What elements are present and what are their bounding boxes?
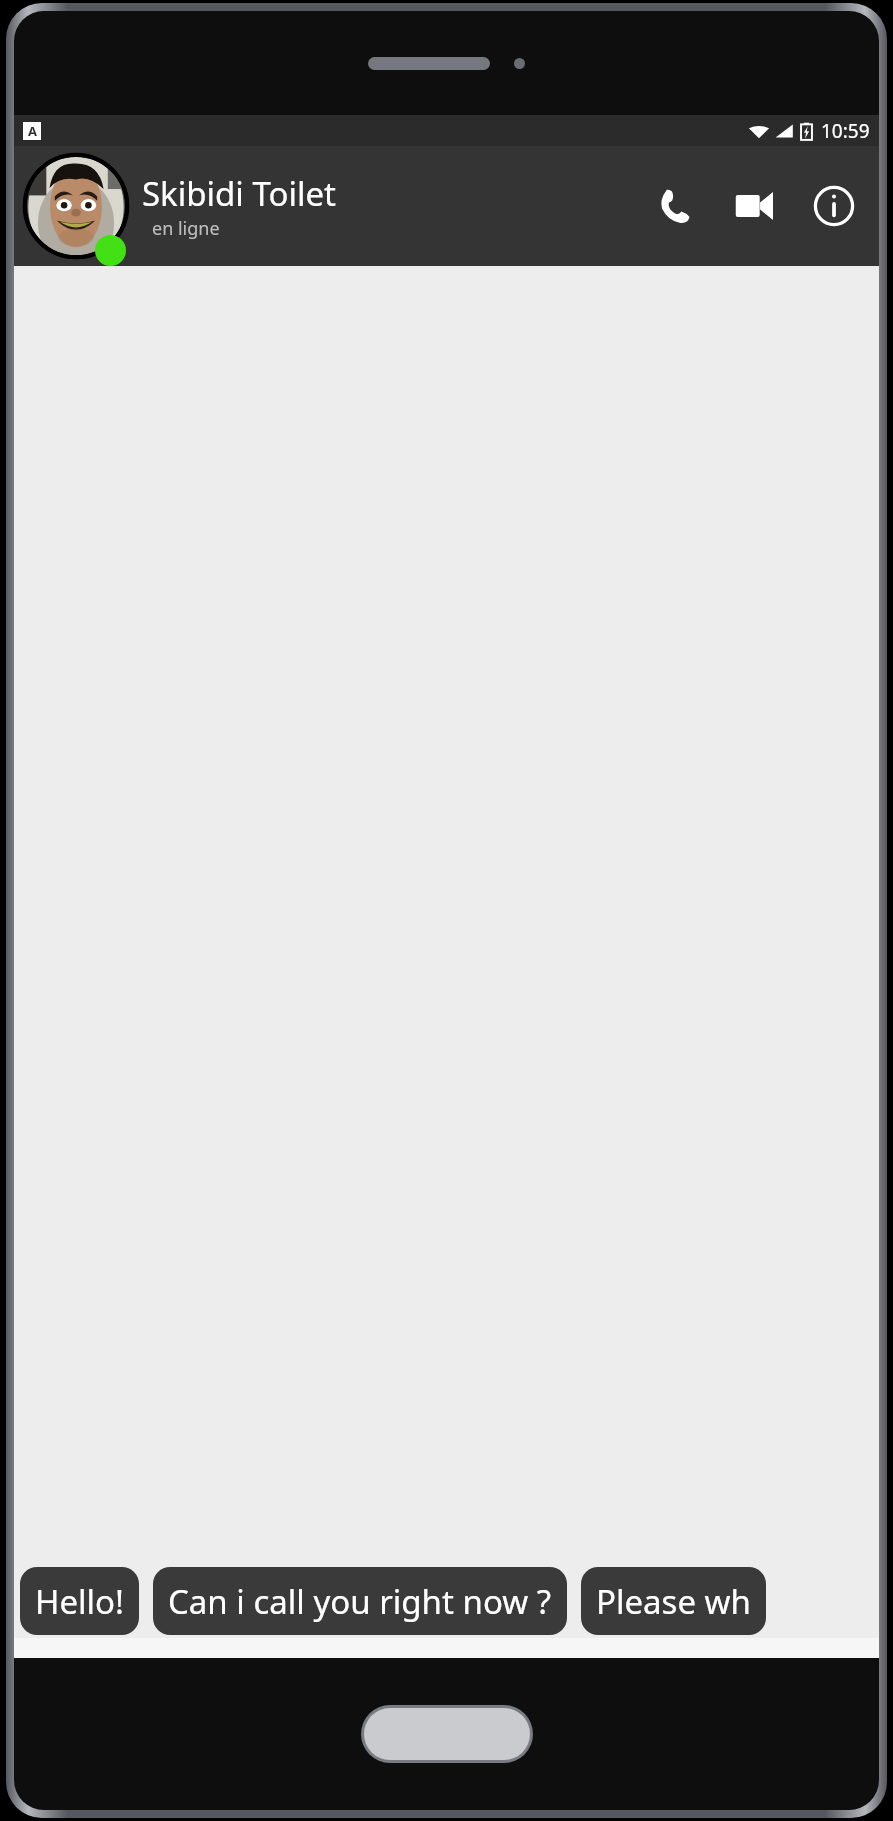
button[interactable]: Hello! bbox=[20, 1567, 139, 1635]
staticText: Can i call you right now ? bbox=[168, 1579, 552, 1624]
staticText: Skibidi Toilet bbox=[142, 171, 337, 216]
button[interactable]: Please wh bbox=[581, 1567, 766, 1635]
button[interactable]: Video call bbox=[723, 175, 785, 237]
button[interactable]: Can i call you right now ? bbox=[153, 1567, 567, 1635]
staticText: Please wh bbox=[596, 1579, 751, 1624]
button[interactable]: Contact info bbox=[803, 175, 865, 237]
staticText: en ligne bbox=[152, 216, 220, 241]
staticText: A bbox=[28, 122, 37, 140]
button[interactable]: Contact avatar bbox=[18, 148, 134, 264]
staticText: 10:59 bbox=[821, 118, 870, 144]
staticText: Hello! bbox=[35, 1579, 124, 1624]
button[interactable]: Voice call bbox=[643, 175, 705, 237]
